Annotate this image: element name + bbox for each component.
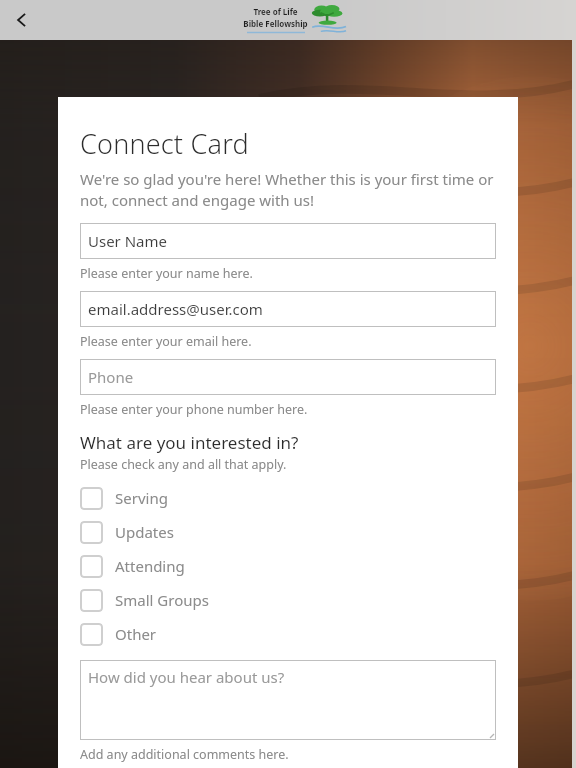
button[interactable]: User Name xyxy=(80,223,496,259)
staticText: Attending xyxy=(115,556,185,576)
staticText: email.address@user.com xyxy=(88,299,263,319)
staticText: Bible Fellowship xyxy=(243,18,308,29)
staticText: Updates xyxy=(115,522,174,542)
button[interactable]: Phone xyxy=(80,359,496,395)
staticText: Please check any and all that apply. xyxy=(80,456,287,473)
button[interactable]: Updates xyxy=(80,515,496,549)
staticText: Please enter your phone number here. xyxy=(80,401,308,418)
button[interactable]: Back xyxy=(0,0,44,40)
staticText: User Name xyxy=(88,231,168,251)
staticText: Serving xyxy=(115,488,168,508)
staticText: Add any additional comments here. xyxy=(80,746,289,763)
button[interactable]: email.address@user.com xyxy=(80,291,496,327)
staticText: Please enter your name here. xyxy=(80,265,253,282)
staticText: Tree of Life xyxy=(253,6,298,17)
staticText: How did you hear about us? xyxy=(88,667,285,687)
staticText: Small Groups xyxy=(115,590,209,610)
staticText: Phone xyxy=(88,367,134,387)
staticText: What are you interested in? xyxy=(80,431,299,454)
staticText: Please enter your email here. xyxy=(80,333,252,350)
staticText: Other xyxy=(115,624,157,644)
button[interactable]: Small Groups xyxy=(80,583,496,617)
button[interactable]: Other xyxy=(80,617,496,651)
staticText: We're so glad you're here! Whether this … xyxy=(80,169,496,211)
button[interactable]: How did you hear about us? xyxy=(80,660,496,740)
button[interactable]: Serving xyxy=(80,481,496,515)
button[interactable]: Attending xyxy=(80,549,496,583)
staticText: Connect Card xyxy=(80,125,249,162)
